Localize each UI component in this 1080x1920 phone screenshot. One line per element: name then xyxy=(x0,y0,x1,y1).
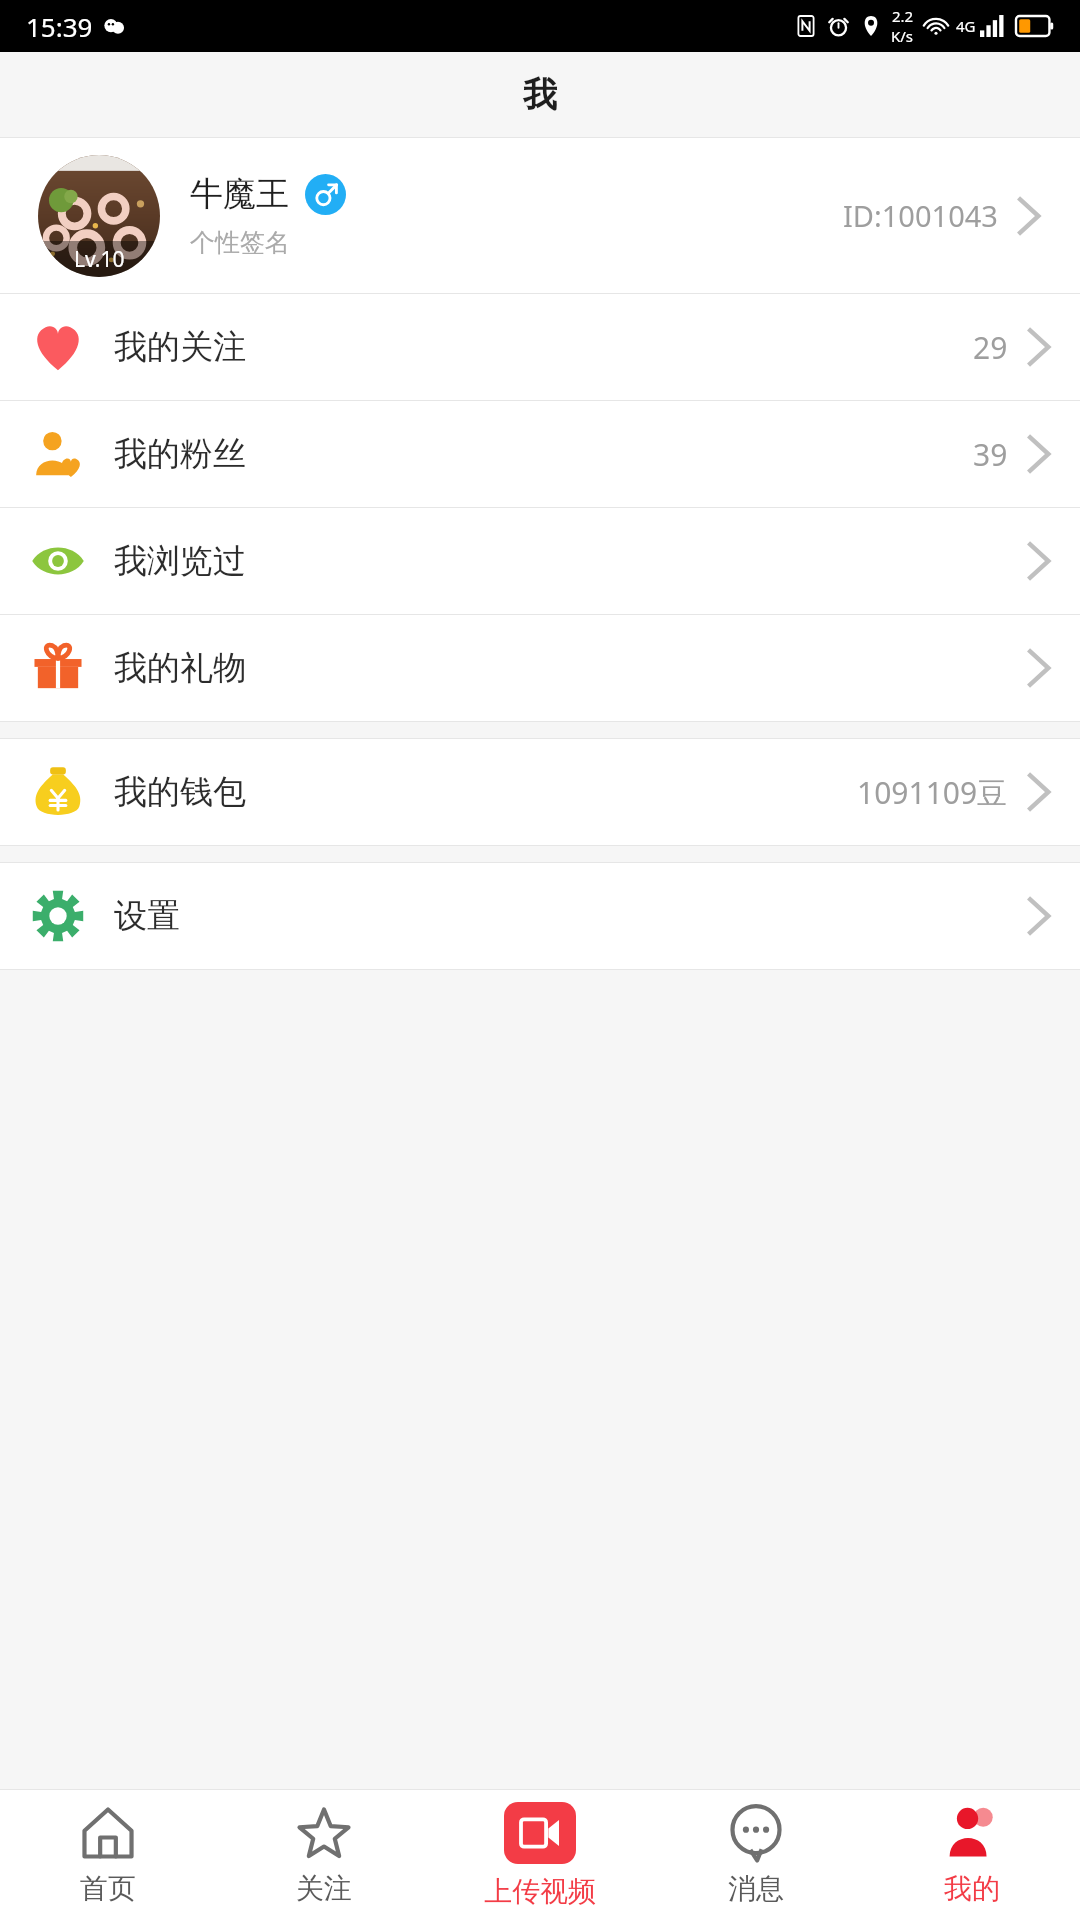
button[interactable]: 我的粉丝 xyxy=(0,401,1080,507)
button[interactable]: 我的礼物 xyxy=(0,615,1080,721)
staticText: 消息 xyxy=(728,1871,784,1906)
button[interactable]: 设置 xyxy=(0,863,1080,969)
button[interactable]: 我浏览过 xyxy=(0,508,1080,614)
staticText: K/s xyxy=(891,26,914,46)
staticText: 2.2 xyxy=(892,6,914,26)
staticText: 我的关注 xyxy=(114,326,246,368)
staticText: 1091109豆 xyxy=(857,772,1008,813)
staticText: 我浏览过 xyxy=(114,540,246,582)
button[interactable]: 我的钱包 xyxy=(0,739,1080,845)
button[interactable]: 消息 xyxy=(648,1790,864,1920)
staticText: Lv.10 xyxy=(74,245,125,274)
staticText: ID:1001043 xyxy=(843,196,998,235)
staticText: 我 xyxy=(523,73,557,116)
staticText: 首页 xyxy=(80,1871,136,1906)
staticText: 我的粉丝 xyxy=(114,433,246,475)
staticText: 4G xyxy=(956,16,976,36)
button[interactable]: 我的关注 xyxy=(0,294,1080,400)
staticText: 关注 xyxy=(296,1871,352,1906)
staticText: 15:39 xyxy=(26,9,93,44)
staticText: 29 xyxy=(973,327,1008,368)
staticText: 牛魔王 xyxy=(190,173,289,215)
button[interactable]: 关注 xyxy=(216,1790,432,1920)
button[interactable]: 上传视频 xyxy=(432,1790,648,1920)
button[interactable]: 我的 xyxy=(864,1790,1080,1920)
staticText: 设置 xyxy=(114,895,180,937)
staticText: 上传视频 xyxy=(484,1874,596,1909)
button[interactable]: 首页 xyxy=(0,1790,216,1920)
staticText: 我的礼物 xyxy=(114,647,246,689)
staticText: 39 xyxy=(973,434,1008,475)
staticText: 我的 xyxy=(944,1871,1000,1906)
staticText: 个性签名 xyxy=(190,227,290,258)
staticText: 我的钱包 xyxy=(114,771,246,813)
button[interactable]: Lv.10 xyxy=(0,138,1080,293)
